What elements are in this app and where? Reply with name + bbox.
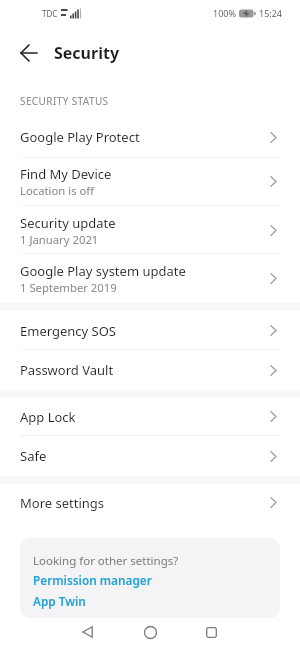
button[interactable]: App Twin [33,593,86,609]
staticText: Location is off [20,183,95,198]
staticText: Permission manager [33,572,152,588]
button[interactable]: Google Play Protect [0,117,300,157]
staticText: Google Play system update [20,262,186,280]
staticText: More settings [20,494,105,512]
staticText: Google Play Protect [20,128,140,146]
staticText: SECURITY STATUS [20,94,109,108]
staticText: App Twin [33,593,86,609]
staticText: 1 January 2021 [20,232,99,247]
staticText: 15:24 [259,7,283,19]
staticText: Security update [20,214,116,232]
button[interactable]: App Lock [0,398,300,435]
staticText: TDC [42,8,58,19]
button[interactable]: Safe [0,436,300,476]
staticText: 100% [213,7,236,19]
button[interactable]: Emergency SOS [0,311,300,350]
staticText: Emergency SOS [20,322,116,340]
button[interactable] [76,620,98,644]
button[interactable]: More settings [0,484,300,521]
button[interactable] [139,620,162,644]
staticText: Security [54,42,120,64]
staticText: Safe [20,447,47,465]
staticText: Password Vault [20,361,114,379]
button[interactable] [12,38,46,68]
staticText: 1 September 2019 [20,280,117,295]
button[interactable]: Password Vault [0,350,300,390]
button[interactable]: Google Play system update [0,254,300,303]
button[interactable] [200,620,222,644]
staticText: App Lock [20,408,76,426]
button[interactable]: Permission manager [33,572,152,588]
staticText: Find My Device [20,165,112,183]
button[interactable]: Find My Device [0,157,300,206]
staticText: Looking for other settings? [33,553,179,569]
button[interactable]: Security update [0,206,300,254]
